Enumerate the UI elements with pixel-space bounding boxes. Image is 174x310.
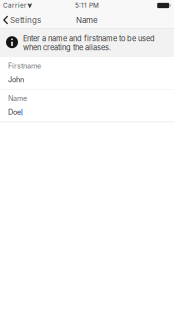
staticText: John (8, 75, 24, 84)
staticText: Name (76, 15, 98, 25)
staticText: Enter a name and firstname to be used wh… (23, 34, 155, 52)
button[interactable]: Firstname (0, 57, 174, 89)
staticText: Settings (10, 15, 41, 25)
staticText: Carrier (3, 2, 26, 9)
staticText: Firstname (8, 61, 41, 70)
staticText: Doe (8, 108, 21, 116)
staticText: 5:11 PM (75, 2, 99, 9)
button[interactable]: Settings (0, 11, 46, 29)
staticText: Name (8, 94, 27, 103)
button[interactable]: Name (0, 90, 174, 122)
